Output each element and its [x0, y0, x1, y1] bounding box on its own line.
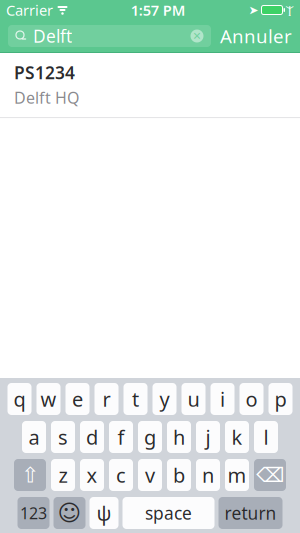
button[interactable]: a: [22, 421, 46, 453]
staticText: x: [86, 462, 97, 488]
staticText: v: [145, 462, 155, 488]
staticText: a: [28, 424, 39, 450]
staticText: s: [58, 424, 68, 450]
staticText: return: [224, 501, 276, 524]
staticText: space: [145, 501, 192, 524]
button[interactable]: w: [36, 383, 60, 415]
staticText: e: [72, 386, 83, 412]
button[interactable]: Annuler: [220, 20, 292, 52]
staticText: y: [159, 386, 169, 412]
button[interactable]: Emoji: [53, 497, 85, 529]
button[interactable]: r: [94, 383, 118, 415]
button[interactable]: h: [167, 421, 191, 453]
staticText: n: [202, 462, 214, 488]
staticText: Delft HQ: [14, 87, 79, 108]
button[interactable]: g: [138, 421, 162, 453]
button[interactable]: y: [152, 383, 176, 415]
staticText: Annuler: [220, 24, 292, 48]
staticText: w: [40, 386, 56, 412]
staticText: ⇧: [21, 463, 39, 487]
button[interactable]: z: [51, 459, 75, 491]
staticText: g: [144, 424, 156, 450]
button[interactable]: v: [138, 459, 162, 491]
button[interactable]: b: [167, 459, 191, 491]
staticText: ➤: [248, 3, 258, 17]
staticText: Delft: [33, 24, 72, 47]
staticText: 123: [20, 502, 47, 524]
button[interactable]: p: [268, 383, 292, 415]
staticText: h: [173, 424, 185, 450]
button[interactable]: PS1234: [0, 53, 300, 118]
button[interactable]: s: [51, 421, 75, 453]
staticText: r: [102, 386, 110, 412]
button[interactable]: space: [122, 497, 214, 529]
staticText: ψ: [96, 500, 111, 526]
staticText: q: [13, 386, 25, 412]
staticText: Carrier: [6, 0, 53, 20]
staticText: o: [245, 386, 257, 412]
button[interactable]: i: [210, 383, 234, 415]
button[interactable]: f: [109, 421, 133, 453]
button[interactable]: u: [181, 383, 205, 415]
button[interactable]: e: [65, 383, 89, 415]
button[interactable]: t: [123, 383, 147, 415]
button[interactable]: j: [196, 421, 220, 453]
staticText: ᛉ: [286, 3, 294, 17]
button[interactable]: return: [218, 497, 282, 529]
button[interactable]: l: [254, 421, 278, 453]
staticText: d: [86, 424, 98, 450]
staticText: j: [205, 424, 210, 450]
staticText: ☺: [57, 500, 81, 526]
button[interactable]: x: [80, 459, 104, 491]
button[interactable]: d: [80, 421, 104, 453]
button[interactable]: Shift: [14, 459, 46, 491]
button[interactable]: 123: [17, 497, 49, 529]
button[interactable]: Clear text: [188, 27, 206, 45]
staticText: m: [227, 462, 246, 488]
staticText: l: [263, 424, 268, 450]
staticText: 1:57 PM: [131, 0, 186, 20]
staticText: p: [274, 386, 286, 412]
button[interactable]: Delete: [254, 459, 286, 491]
staticText: PS1234: [14, 61, 75, 84]
button[interactable]: n: [196, 459, 220, 491]
button[interactable]: m: [225, 459, 249, 491]
staticText: b: [173, 462, 185, 488]
staticText: z: [58, 462, 67, 488]
staticText: f: [117, 424, 124, 450]
staticText: i: [220, 386, 225, 412]
staticText: ✕: [192, 30, 201, 42]
staticText: c: [116, 462, 126, 488]
button[interactable]: Dictate: [89, 497, 118, 529]
staticText: ⌫: [256, 464, 284, 486]
button[interactable]: o: [239, 383, 263, 415]
staticText: t: [132, 386, 139, 412]
staticText: u: [187, 386, 199, 412]
staticText: k: [231, 424, 242, 450]
button[interactable]: k: [225, 421, 249, 453]
button[interactable]: c: [109, 459, 133, 491]
button[interactable]: q: [7, 383, 31, 415]
